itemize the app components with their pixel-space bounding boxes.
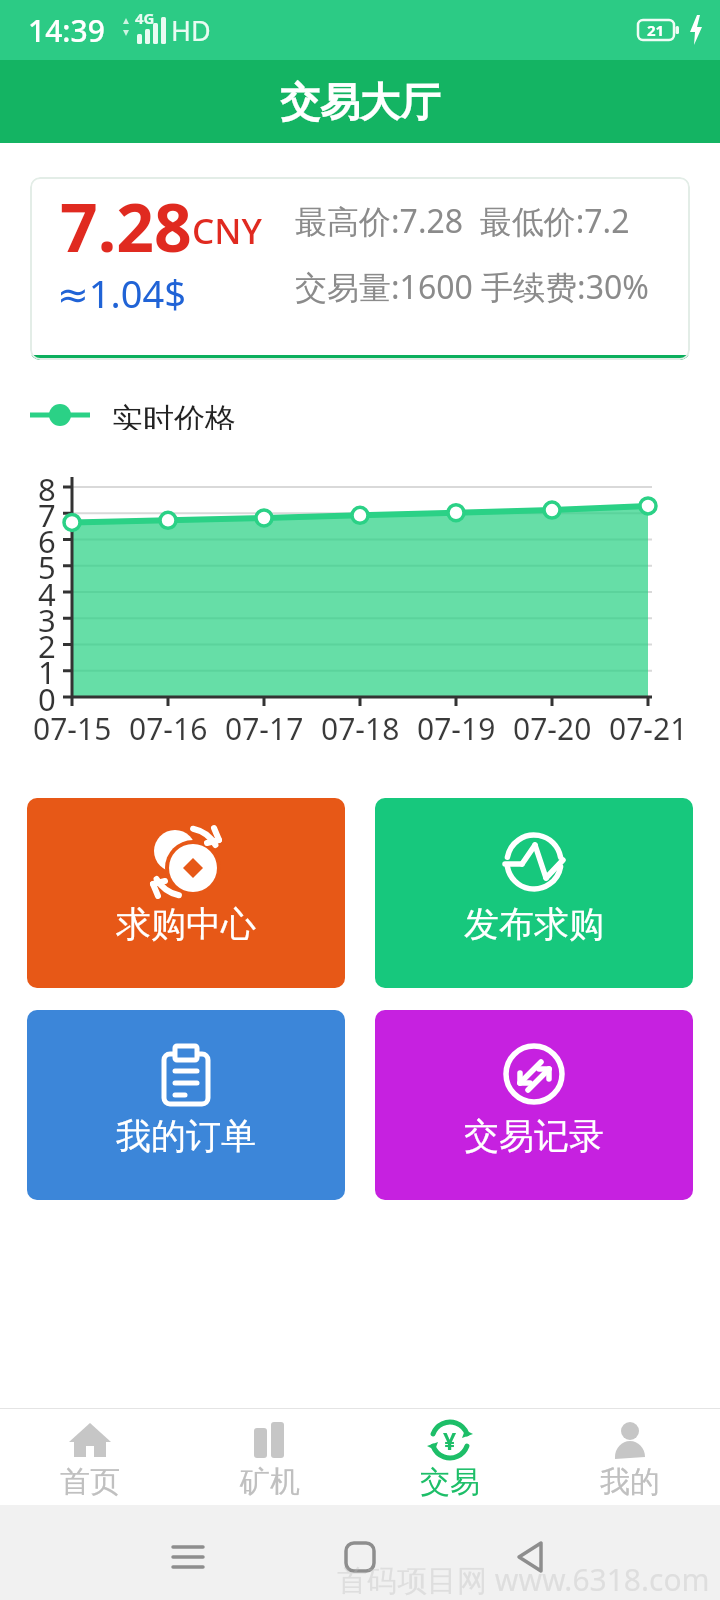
staticText: 3: [38, 599, 56, 641]
staticText: 4G: [135, 8, 155, 28]
button[interactable]: 7.28: [30, 177, 690, 360]
staticText: 交易大厅: [280, 77, 440, 127]
staticText: 实时价格: [112, 400, 236, 430]
staticText: 矿机: [240, 1463, 300, 1501]
staticText: 07-20: [513, 708, 592, 749]
staticText: 07-18: [321, 708, 400, 749]
staticText: 07-17: [225, 708, 304, 749]
staticText: 5: [38, 546, 56, 588]
staticText: 07-21: [609, 708, 688, 749]
button[interactable]: 我的订单: [27, 1010, 345, 1200]
staticText: ≈1.04$: [57, 267, 186, 319]
staticText: 07-15: [33, 708, 112, 749]
button[interactable]: 我的: [540, 1409, 720, 1505]
staticText: HD: [171, 12, 211, 49]
staticText: 21: [647, 20, 665, 40]
staticText: 交易记录: [464, 1114, 604, 1158]
staticText: 交易量:1600 手续费:30%: [295, 265, 649, 309]
staticText: 发布求购: [464, 902, 604, 946]
staticText: 7.28: [60, 181, 192, 271]
staticText: 1: [38, 651, 56, 693]
button[interactable]: 首页: [0, 1409, 180, 1505]
staticText: 首码项目网 www.6318.com: [337, 1559, 710, 1600]
staticText: 4: [38, 573, 56, 615]
staticText: 我的: [600, 1463, 660, 1501]
staticText: 求购中心: [116, 902, 256, 946]
button[interactable]: 矿机: [180, 1409, 360, 1505]
staticText: 07-19: [417, 708, 496, 749]
staticText: 7: [38, 494, 56, 536]
staticText: 0: [38, 678, 56, 720]
button[interactable]: 发布求购: [375, 798, 693, 988]
staticText: 14:39: [28, 10, 105, 51]
staticText: 最高价:7.28 最低价:7.2: [295, 199, 630, 243]
staticText: CNY: [192, 207, 262, 255]
staticText: 07-16: [129, 708, 208, 749]
staticText: 8: [38, 468, 56, 510]
button[interactable]: 交易记录: [375, 1010, 693, 1200]
staticText: 首页: [60, 1463, 120, 1501]
button[interactable]: 求购中心: [27, 798, 345, 988]
staticText: 6: [38, 520, 56, 562]
staticText: 2: [38, 625, 56, 667]
staticText: ¥: [443, 1425, 457, 1456]
button[interactable]: ¥: [360, 1409, 540, 1505]
staticText: 我的订单: [116, 1114, 256, 1158]
staticText: 交易: [420, 1463, 480, 1501]
